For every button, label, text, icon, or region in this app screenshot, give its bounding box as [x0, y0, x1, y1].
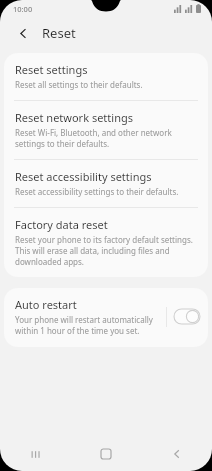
- button[interactable]: Auto restart toggle: [174, 309, 200, 324]
- staticText: Reset accessibility settings to their de…: [15, 186, 179, 197]
- staticText: Reset Wi-Fi, Bluetooth, and other networ…: [15, 127, 196, 149]
- button[interactable]: Factory data reset: [4, 208, 208, 277]
- button[interactable]: Recents: [0, 437, 70, 471]
- staticText: Reset settings: [15, 62, 88, 77]
- button[interactable]: Auto restart: [4, 288, 208, 347]
- staticText: Reset: [42, 24, 76, 42]
- button[interactable]: Reset settings: [4, 53, 208, 100]
- button[interactable]: Reset network settings: [4, 101, 208, 159]
- staticText: Reset network settings: [15, 110, 133, 125]
- staticText: Reset accessibility settings: [15, 169, 152, 184]
- button[interactable]: Reset accessibility settings: [4, 160, 208, 207]
- staticText: Reset your phone to its factory default …: [15, 234, 196, 267]
- button[interactable]: Back: [141, 437, 212, 471]
- button[interactable]: Home: [70, 437, 141, 471]
- staticText: Auto restart: [15, 297, 77, 312]
- staticText: Factory data reset: [15, 217, 108, 232]
- staticText: Reset all settings to their defaults.: [15, 79, 143, 90]
- staticText: Your phone will restart automatically wi…: [15, 314, 160, 336]
- staticText: 10:00: [13, 4, 33, 14]
- button[interactable]: Back: [13, 23, 33, 43]
